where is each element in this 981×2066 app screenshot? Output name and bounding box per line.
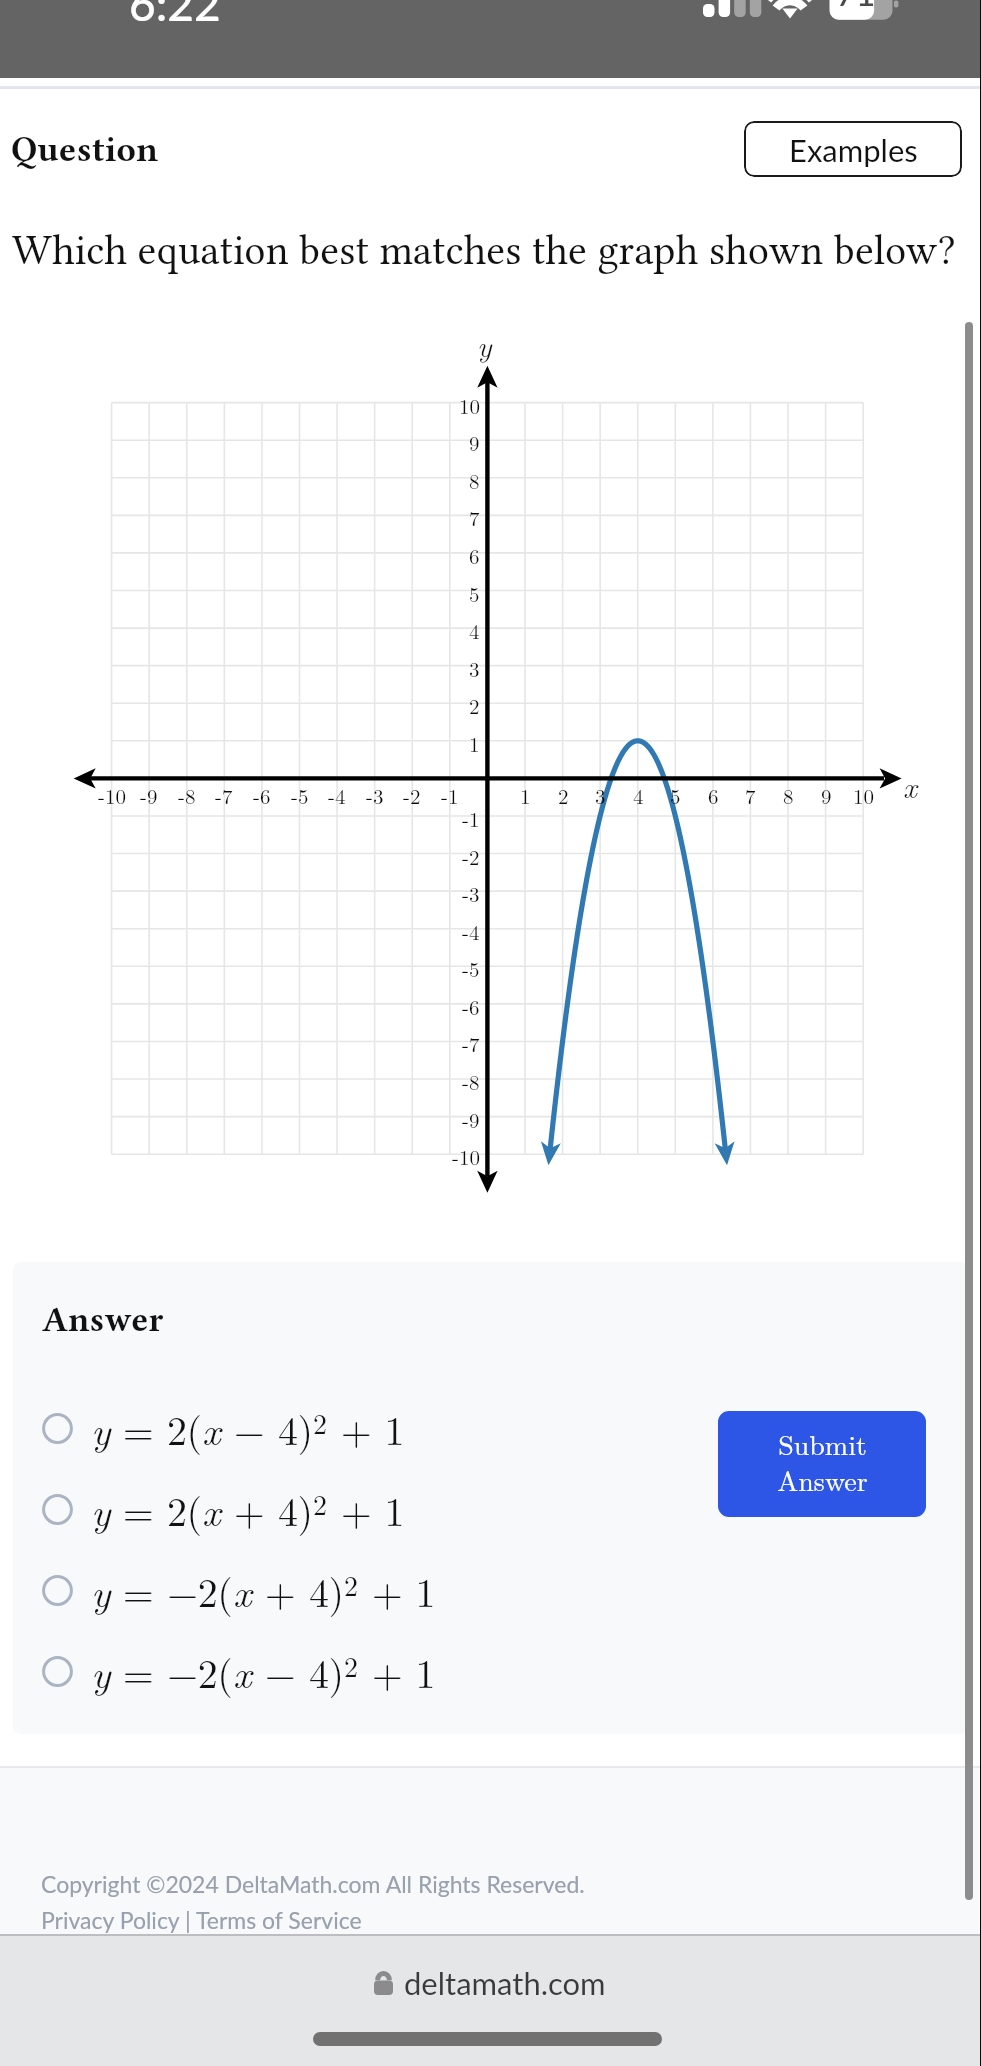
staticText: 2 xyxy=(469,690,480,716)
staticText: y xyxy=(91,1643,110,1700)
staticText: 2( xyxy=(167,1400,202,1457)
button[interactable]: Submit Answer xyxy=(718,1411,926,1517)
button[interactable]: y xyxy=(42,1478,692,1540)
staticText: y xyxy=(91,1400,110,1457)
staticText: -7 xyxy=(462,1028,480,1054)
staticText: Answer xyxy=(42,1300,164,1340)
other: Secure connection xyxy=(374,1971,393,1995)
staticText: −2( xyxy=(167,1643,233,1700)
staticText: 7 xyxy=(745,780,756,806)
staticText: Question xyxy=(11,129,159,170)
staticText: 8 xyxy=(469,465,480,491)
staticText: 1 xyxy=(520,780,531,806)
staticText: -6 xyxy=(253,780,271,806)
staticText: 4 xyxy=(469,615,480,641)
staticText: + 1 xyxy=(359,1643,435,1700)
staticText: 10 xyxy=(853,780,874,806)
staticText: 6 xyxy=(469,540,480,566)
staticText: 6:22 xyxy=(129,0,221,31)
staticText: 2 xyxy=(313,1402,328,1442)
staticText: Examples xyxy=(789,131,918,168)
staticText: x xyxy=(202,1481,221,1538)
staticText: -1 xyxy=(441,780,459,806)
staticText: = xyxy=(110,1400,167,1457)
staticText: 7 xyxy=(469,502,480,528)
staticText: = xyxy=(110,1643,167,1700)
staticText: 2( xyxy=(167,1481,202,1538)
staticText: 4) xyxy=(309,1562,344,1619)
staticText: -2 xyxy=(462,841,480,867)
staticText: -4 xyxy=(328,780,346,806)
staticText: y xyxy=(477,323,492,365)
staticText: -2 xyxy=(403,780,421,806)
staticText: 2 xyxy=(344,1645,359,1685)
staticText: 9 xyxy=(469,427,480,453)
staticText: − xyxy=(221,1400,278,1457)
staticText: -8 xyxy=(462,1066,480,1092)
staticText: − xyxy=(252,1643,309,1700)
staticText: 3 xyxy=(595,780,606,806)
staticText: y xyxy=(91,1562,110,1619)
staticText: 5 xyxy=(469,578,480,604)
button[interactable]: Examples xyxy=(744,121,962,177)
staticText: = xyxy=(110,1481,167,1538)
staticText: Copyright ©2024 DeltaMath.com All Rights… xyxy=(41,1870,585,1898)
staticText: 4) xyxy=(278,1400,313,1457)
staticText: x xyxy=(202,1400,221,1457)
staticText: + 1 xyxy=(328,1400,404,1457)
staticText: 6 xyxy=(708,780,719,806)
button[interactable]: Privacy Policy | Terms of Service xyxy=(41,1906,362,1934)
staticText: 3 xyxy=(469,653,480,679)
staticText: + 1 xyxy=(328,1481,404,1538)
staticText: -3 xyxy=(462,878,480,904)
staticText: 4) xyxy=(309,1643,344,1700)
staticText: -1 xyxy=(462,803,480,829)
staticText: -7 xyxy=(215,780,233,806)
staticText: 2 xyxy=(313,1483,328,1523)
staticText: 4 xyxy=(633,780,644,806)
staticText: x xyxy=(233,1643,252,1700)
staticText: 8 xyxy=(783,780,794,806)
staticText: x xyxy=(903,764,917,806)
staticText: + xyxy=(221,1481,278,1538)
staticText: -4 xyxy=(462,916,480,942)
button[interactable]: y xyxy=(42,1397,692,1459)
staticText: −2( xyxy=(167,1562,233,1619)
staticText: -5 xyxy=(291,780,309,806)
staticText: 9 xyxy=(821,780,832,806)
staticText: 5 xyxy=(670,780,681,806)
staticText: + 1 xyxy=(359,1562,435,1619)
staticText: 2 xyxy=(344,1564,359,1604)
staticText: deltamath.com xyxy=(404,1964,606,2001)
staticText: + xyxy=(252,1562,309,1619)
staticText: -10 xyxy=(98,780,126,806)
staticText: -8 xyxy=(178,780,196,806)
staticText: 2 xyxy=(558,780,569,806)
staticText: -5 xyxy=(462,953,480,979)
button[interactable]: y xyxy=(42,1559,692,1621)
staticText: 71 xyxy=(836,0,876,13)
staticText: 10 xyxy=(459,390,480,416)
staticText: 4) xyxy=(278,1481,313,1538)
staticText: x xyxy=(233,1562,252,1619)
staticText: -9 xyxy=(140,780,158,806)
staticText: -10 xyxy=(452,1141,480,1167)
staticText: Submit Answer xyxy=(777,1423,868,1500)
staticText: -6 xyxy=(462,991,480,1017)
staticText: y xyxy=(91,1481,110,1538)
staticText: = xyxy=(110,1562,167,1619)
staticText: Which equation best matches the graph sh… xyxy=(12,226,956,274)
staticText: -9 xyxy=(462,1104,480,1130)
button[interactable]: y xyxy=(42,1640,692,1702)
staticText: 1 xyxy=(469,728,480,754)
staticText: -3 xyxy=(366,780,384,806)
